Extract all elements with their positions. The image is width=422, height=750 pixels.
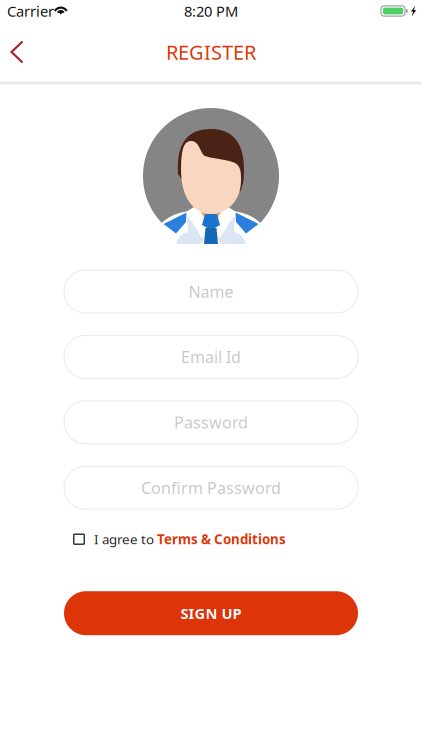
staticText: Carrier: [7, 1, 54, 21]
staticText: Terms & Conditions: [157, 530, 286, 548]
button[interactable]: Email Id: [64, 335, 358, 378]
staticText: Email Id: [181, 346, 241, 367]
button[interactable]: Name: [64, 270, 358, 313]
button[interactable]: Terms & Conditions: [157, 530, 286, 548]
button[interactable]: Password: [64, 401, 358, 444]
staticText: SIGN UP: [180, 603, 241, 623]
staticText: I agree to: [94, 530, 157, 548]
staticText: Password: [174, 412, 248, 433]
staticText: Confirm Password: [141, 477, 281, 498]
staticText: Name: [188, 281, 233, 302]
staticText: 8:20 PM: [184, 1, 238, 21]
staticText: REGISTER: [166, 39, 256, 65]
button[interactable]: SIGN UP: [64, 591, 358, 635]
button[interactable]: Confirm Password: [64, 466, 358, 509]
button[interactable]: I agree to terms checkbox: [64, 528, 94, 550]
button[interactable]: Back: [4, 36, 34, 68]
